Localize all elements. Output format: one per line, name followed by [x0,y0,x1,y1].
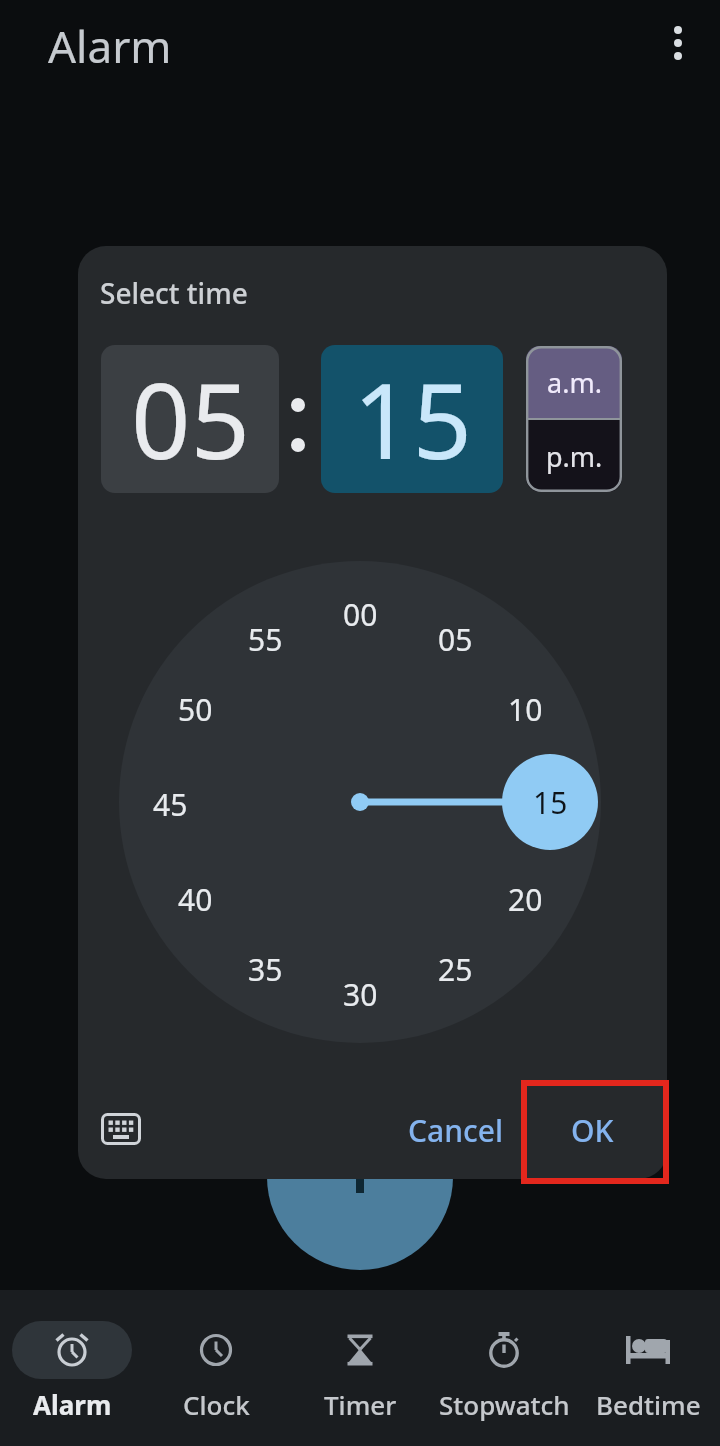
staticText: 40 [178,879,213,915]
button[interactable]: 15 [502,754,598,850]
staticText: 05 [438,619,473,655]
staticText: 35 [248,949,283,985]
staticText: Select time [100,274,248,312]
button[interactable]: Clock [144,1290,288,1446]
staticText: 15 [533,782,568,823]
staticText: p.m. [546,438,603,475]
staticText: Cancel [408,1110,504,1151]
staticText: Alarm [48,16,172,76]
staticText: 30 [343,974,378,1010]
button[interactable]: Cancel [386,1102,526,1158]
staticText: 10 [508,689,543,725]
staticText: 15 [353,348,472,490]
button[interactable]: Bedtime [576,1290,720,1446]
staticText: 00 [343,594,378,630]
staticText: Alarm [33,1387,112,1422]
staticText: 25 [438,949,473,985]
staticText: 45 [153,784,188,820]
staticText: Clock [183,1387,250,1422]
staticText: OK [571,1110,614,1151]
button[interactable] [101,1112,141,1146]
button[interactable]: 15 [321,345,503,493]
button[interactable]: Stopwatch [432,1290,576,1446]
staticText: 55 [248,619,283,655]
staticText: 05 [131,348,250,490]
button[interactable]: a.m. [526,346,622,418]
button[interactable]: Timer [288,1290,432,1446]
staticText: 20 [508,879,543,915]
staticText: Bedtime [596,1387,701,1422]
staticText: Stopwatch [439,1387,570,1422]
staticText: 50 [178,689,213,725]
button[interactable] [668,22,688,66]
button[interactable]: p.m. [526,420,622,492]
staticText: Timer [324,1387,397,1422]
staticText: a.m. [547,364,602,401]
button[interactable]: Alarm [0,1290,144,1446]
button[interactable]: OK [542,1102,642,1158]
button[interactable]: 05 [101,345,279,493]
